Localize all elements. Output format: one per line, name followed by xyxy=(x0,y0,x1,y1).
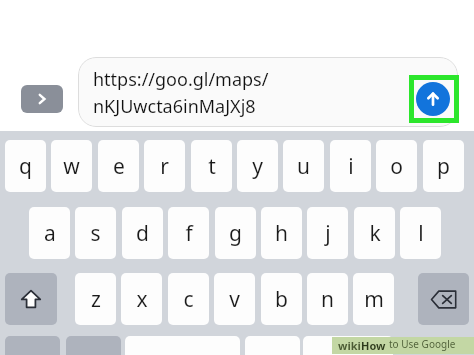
staticText: a xyxy=(44,219,56,248)
button[interactable] xyxy=(303,336,393,355)
staticText: m xyxy=(364,285,384,314)
button[interactable]: l xyxy=(400,207,441,259)
button[interactable]: d xyxy=(122,207,163,259)
staticText: e xyxy=(113,152,125,181)
button[interactable]: e xyxy=(98,140,139,192)
staticText: n xyxy=(321,285,334,314)
staticText: q xyxy=(19,152,32,181)
staticText: r xyxy=(160,152,169,181)
staticText: p xyxy=(437,152,450,181)
staticText: c xyxy=(183,285,194,314)
staticText: h xyxy=(275,219,288,248)
button[interactable]: s xyxy=(75,207,116,259)
button[interactable]: g xyxy=(215,207,256,259)
button[interactable]: p xyxy=(423,140,464,192)
button[interactable]: q xyxy=(5,140,46,192)
button[interactable]: y xyxy=(237,140,278,192)
button[interactable]: n xyxy=(307,273,348,325)
button[interactable]: Shift xyxy=(5,273,57,325)
staticText: j xyxy=(325,219,331,248)
staticText: i xyxy=(348,152,354,181)
button[interactable]: c xyxy=(168,273,209,325)
staticText: d xyxy=(136,219,149,248)
staticText: b xyxy=(275,285,288,314)
button[interactable]: z xyxy=(75,273,116,325)
button[interactable]: a xyxy=(29,207,70,259)
button[interactable]: i xyxy=(330,140,371,192)
staticText: to Use Google Maps xyxy=(389,337,474,354)
staticText: y xyxy=(252,152,263,181)
staticText: u xyxy=(297,152,310,181)
button[interactable]: o xyxy=(376,140,417,192)
button[interactable]: f xyxy=(168,207,209,259)
button[interactable]: Emoji xyxy=(66,336,121,355)
staticText: s xyxy=(90,219,101,248)
button[interactable]: x xyxy=(121,273,162,325)
staticText: w xyxy=(63,152,80,181)
button[interactable]: m xyxy=(353,273,394,325)
button[interactable]: https://goo.gl/maps/ xyxy=(78,57,458,127)
staticText: o xyxy=(390,152,403,181)
staticText: g xyxy=(229,219,242,248)
button[interactable]: h xyxy=(261,207,302,259)
staticText: https://goo.gl/maps/ xyxy=(93,67,269,92)
button[interactable]: Backspace xyxy=(418,273,469,325)
button[interactable]: Expand options xyxy=(21,85,63,113)
button[interactable]: k xyxy=(354,207,395,259)
button[interactable]: Send xyxy=(416,82,450,116)
staticText: How xyxy=(361,338,386,353)
staticText: f xyxy=(185,219,193,248)
button[interactable]: b xyxy=(261,273,302,325)
button[interactable]: r xyxy=(144,140,185,192)
staticText: l xyxy=(418,219,424,248)
button[interactable]: w xyxy=(51,140,92,192)
button[interactable]: j xyxy=(307,207,348,259)
staticText: v xyxy=(229,285,240,314)
staticText: z xyxy=(91,285,101,314)
button[interactable]: t xyxy=(191,140,232,192)
staticText: x xyxy=(136,285,148,314)
button[interactable]: Numbers xyxy=(5,336,60,355)
staticText: nKJUwcta6inMaJXj8 xyxy=(93,94,256,119)
button[interactable]: u xyxy=(283,140,324,192)
staticText: t xyxy=(208,152,216,181)
staticText: wiki xyxy=(338,338,361,353)
button[interactable] xyxy=(245,336,300,355)
button[interactable]: v xyxy=(214,273,255,325)
staticText: k xyxy=(369,219,381,248)
